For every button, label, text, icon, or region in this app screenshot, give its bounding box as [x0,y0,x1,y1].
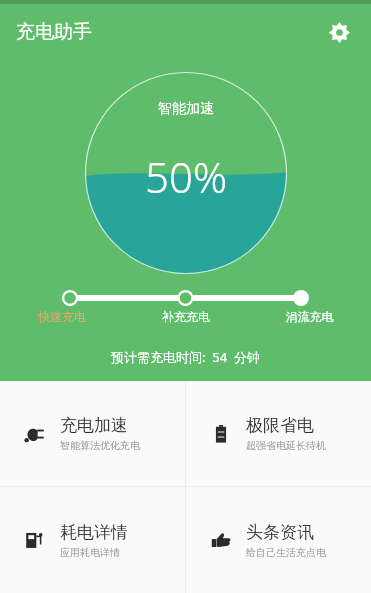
staticText: 超强省电延长待机 [246,439,326,452]
staticText: 耗电详情 [60,522,128,543]
button[interactable]: Settings [321,14,357,50]
staticText: 补充充电 [124,309,248,324]
button[interactable]: 充电加速 [0,381,185,486]
staticText: 涓流充电 [248,309,371,324]
staticText: 智能加速 [158,100,214,118]
button[interactable] [62,290,309,306]
staticText: 充电助手 [16,20,92,44]
staticText: 预计需充电时间: 54 分钟 [111,348,260,366]
staticText: 智能算法优化充电 [60,439,140,452]
staticText: 应用耗电详情 [60,546,120,559]
staticText: 头条资讯 [246,522,314,543]
staticText: 50% [145,148,228,205]
staticText: 充电加速 [60,415,128,436]
staticText: 给自己生活充点电 [246,546,326,559]
button[interactable]: 头条资讯 [186,487,371,593]
staticText: 快速充电 [0,309,124,324]
button[interactable]: 极限省电 [186,381,371,486]
staticText: 极限省电 [246,415,314,436]
button[interactable]: 耗电详情 [0,487,185,593]
